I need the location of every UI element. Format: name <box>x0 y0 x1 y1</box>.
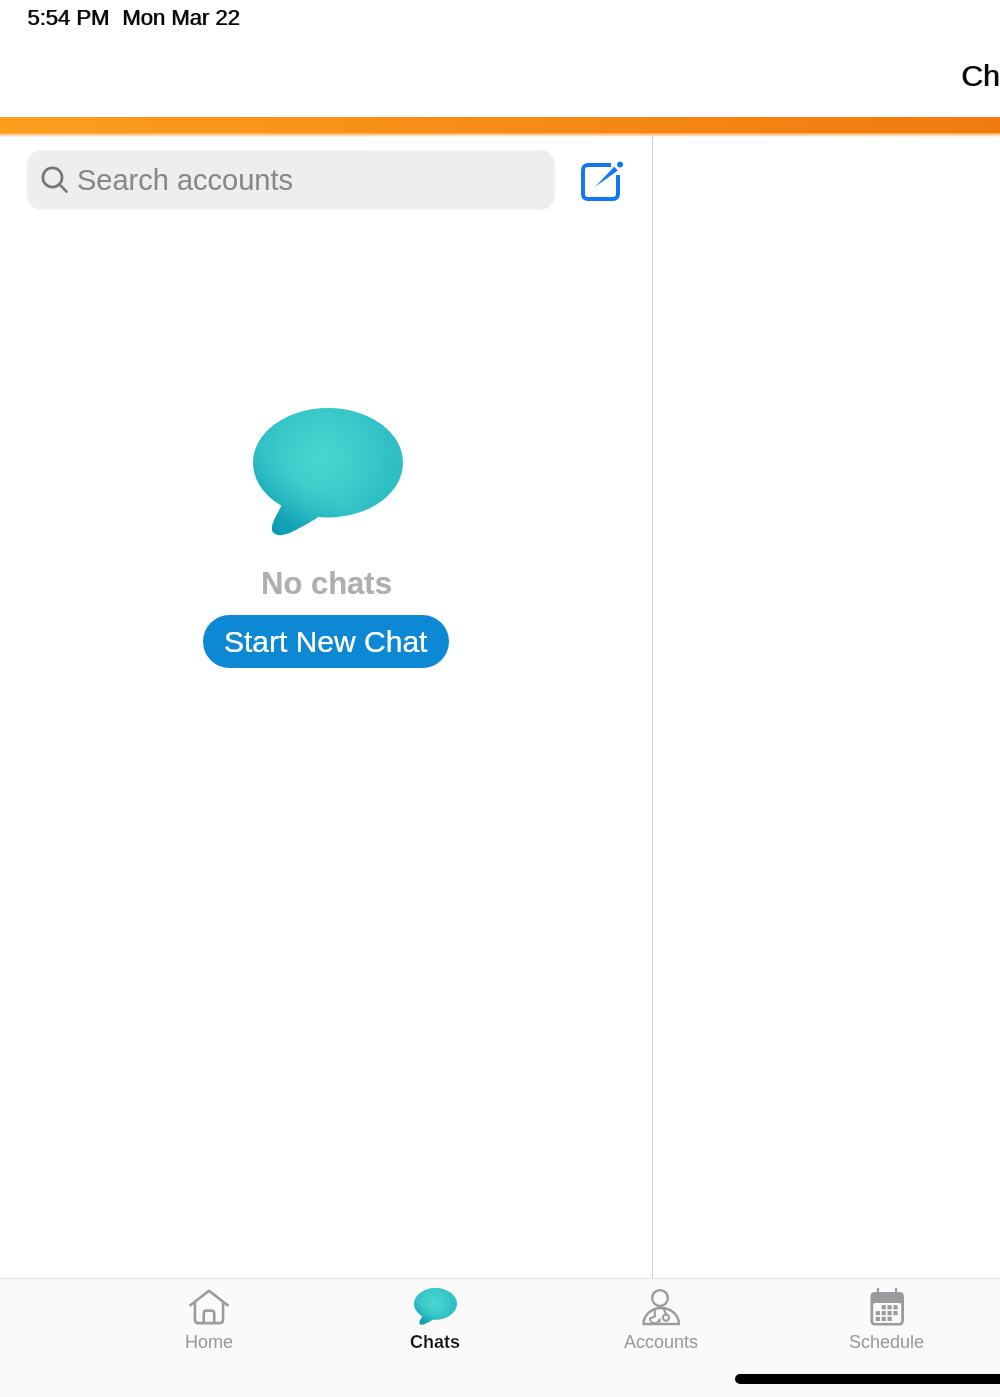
staticText: Chats <box>962 59 1000 93</box>
button[interactable]: Home <box>129 1276 289 1362</box>
staticText: Search accounts <box>77 164 294 196</box>
staticText: Accounts <box>624 1332 699 1352</box>
staticText: Chats <box>961 59 1000 93</box>
staticText: 5:54 PM <box>28 5 110 30</box>
staticText: No chats <box>261 566 392 601</box>
staticText: Home <box>185 1332 234 1352</box>
button[interactable]: Schedule <box>807 1276 967 1362</box>
staticText: Chats <box>410 1332 461 1352</box>
button[interactable]: Accounts <box>581 1276 741 1362</box>
button[interactable]: Chats <box>355 1276 515 1362</box>
button[interactable]: Start New Chat <box>203 615 449 668</box>
staticText: Start New Chat <box>224 625 428 659</box>
staticText: 5:54 PM <box>27 5 109 30</box>
button[interactable]: Search accounts <box>27 150 555 210</box>
staticText: Schedule <box>849 1332 925 1352</box>
button[interactable]: Compose new chat <box>572 152 632 212</box>
staticText: Mon Mar 22 <box>122 5 240 30</box>
staticText: Mon Mar 22 <box>123 5 241 30</box>
